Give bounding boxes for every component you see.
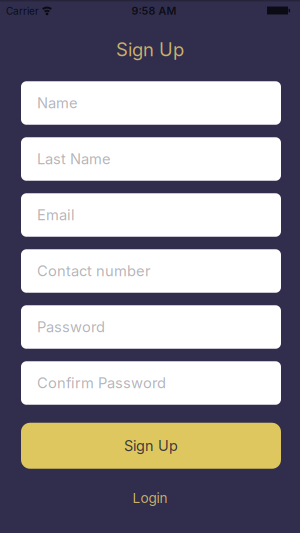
- staticText: Login: [132, 490, 167, 506]
- staticText: Name: [37, 94, 78, 112]
- staticText: Carrier: [6, 5, 39, 17]
- staticText: Sign Up: [124, 437, 178, 454]
- staticText: 9:58 AM: [131, 4, 176, 17]
- button[interactable]: Email: [21, 193, 281, 237]
- button[interactable]: Confirm Password: [21, 361, 281, 405]
- button[interactable]: Contact number: [21, 249, 281, 293]
- button[interactable]: Name: [21, 81, 281, 125]
- button[interactable]: Last Name: [21, 137, 281, 181]
- button[interactable]: Password: [21, 305, 281, 349]
- staticText: Contact number: [37, 262, 151, 280]
- staticText: Last Name: [37, 150, 111, 168]
- staticText: Password: [37, 318, 105, 336]
- staticText: Confirm Password: [37, 374, 166, 392]
- staticText: Email: [37, 206, 75, 224]
- staticText: Sign Up: [116, 38, 184, 61]
- button[interactable]: Sign Up: [21, 423, 281, 469]
- button[interactable]: Login: [132, 490, 167, 506]
